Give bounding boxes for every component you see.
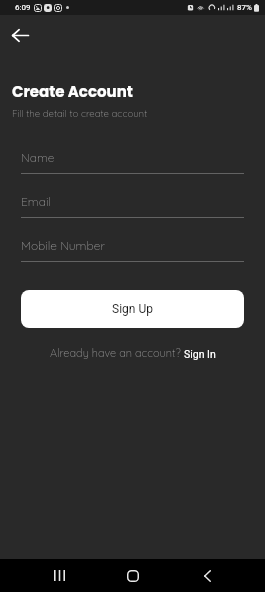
- staticText: Mobile Number: [21, 238, 105, 253]
- staticText: Sign Up: [112, 302, 153, 316]
- button[interactable]: Back: [170, 559, 244, 592]
- staticText: 6:09: [15, 3, 31, 12]
- staticText: Email: [21, 194, 51, 209]
- button[interactable]: Home: [96, 559, 170, 592]
- staticText: Already have an account?: [50, 346, 184, 360]
- button[interactable]: Recent apps: [22, 559, 96, 592]
- button[interactable]: Sign In: [184, 348, 216, 360]
- staticText: Name: [21, 150, 55, 165]
- button[interactable]: Sign Up: [21, 290, 244, 328]
- staticText: 87%: [237, 3, 252, 12]
- button[interactable]: Back: [4, 19, 36, 51]
- staticText: Fill the detail to create account: [12, 107, 148, 119]
- staticText: Create Account: [12, 81, 133, 102]
- staticText: Sign In: [184, 348, 216, 360]
